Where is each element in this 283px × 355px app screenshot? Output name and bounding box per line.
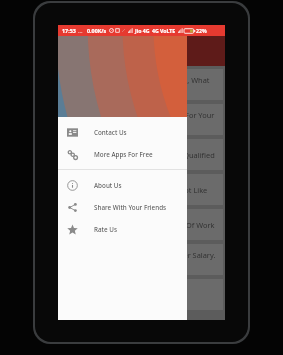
staticText: 22% bbox=[196, 27, 207, 34]
staticText: VoLTE bbox=[160, 27, 176, 34]
staticText: Share With Your Friends bbox=[94, 203, 167, 212]
button[interactable]: How To Introduce Yourself bbox=[60, 279, 223, 310]
button[interactable]: How To Answer Interview Question, What A… bbox=[60, 69, 223, 100]
button[interactable]: More Apps For Free bbox=[58, 143, 187, 165]
staticText: ... bbox=[78, 27, 83, 34]
staticText: Should You Accept A Job With Lower Salar… bbox=[66, 250, 216, 269]
button[interactable]: Contact Us bbox=[58, 121, 187, 143]
staticText: About Us bbox=[94, 181, 122, 190]
button[interactable]: Five Things Hiring Managers Do Not Like bbox=[60, 174, 223, 205]
staticText: Contact Us bbox=[94, 128, 127, 137]
staticText: Five Things Hiring Managers Do Not Like bbox=[66, 185, 208, 195]
button[interactable]: How To Prepare For Your First Day Of Wor… bbox=[60, 209, 223, 240]
staticText: 0.00K/s bbox=[87, 27, 107, 34]
staticText: Rate Us bbox=[94, 225, 117, 234]
button[interactable]: Should You Accept A Job With Lower Salar… bbox=[60, 244, 223, 275]
staticText: How To Explain Why You Are Best Qualifie… bbox=[66, 150, 215, 160]
button[interactable]: How To Negotiate A Higher Salary For You… bbox=[60, 104, 223, 135]
staticText: 17:53 bbox=[62, 27, 76, 34]
button[interactable]: Share With Your Friends bbox=[58, 196, 187, 218]
staticText: Jio 4G bbox=[135, 27, 150, 34]
staticText: How To Answer Interview Question, What A… bbox=[66, 75, 210, 94]
staticText: How To Negotiate A Higher Salary For You… bbox=[66, 110, 215, 129]
button[interactable]: Rate Us bbox=[58, 218, 187, 240]
button[interactable]: How To Explain Why You Are Best Qualifie… bbox=[60, 139, 223, 170]
staticText: How To Prepare For Your First Day Of Wor… bbox=[66, 220, 215, 230]
button[interactable]: About Us bbox=[58, 174, 187, 196]
staticText: 4G bbox=[152, 27, 159, 34]
staticText: More Apps For Free bbox=[94, 150, 153, 159]
